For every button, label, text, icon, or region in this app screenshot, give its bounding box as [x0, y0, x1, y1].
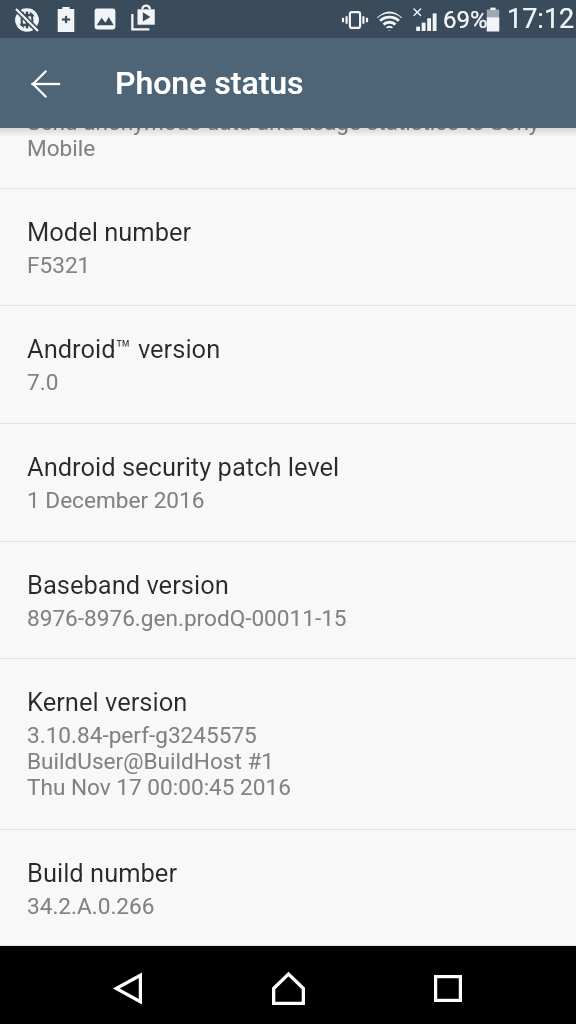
- staticText: Mobile: [27, 135, 96, 161]
- button[interactable]: Recent apps: [408, 954, 488, 1022]
- staticText: F5321: [27, 252, 91, 278]
- staticText: Phone status: [115, 64, 304, 102]
- button[interactable]: Baseband version: [0, 542, 576, 659]
- staticText: 7.0: [27, 369, 59, 395]
- staticText: Send anonymous data and usage statistics…: [27, 128, 540, 135]
- button[interactable]: Android security patch level: [0, 424, 576, 542]
- button[interactable]: Navigate up: [17, 55, 74, 112]
- staticText: 1 December 2016: [27, 487, 205, 513]
- staticText: 8976-8976.gen.prodQ-00011-15: [27, 605, 347, 631]
- staticText: Android™ version: [27, 334, 221, 364]
- button[interactable]: Back: [88, 954, 168, 1022]
- staticText: Thu Nov 17 00:00:45 2016: [27, 774, 291, 800]
- button[interactable]: Home: [248, 954, 328, 1022]
- staticText: Build number: [27, 858, 178, 888]
- staticText: 17:12: [507, 3, 575, 35]
- staticText: Baseband version: [27, 570, 229, 600]
- button[interactable]: Kernel version: [0, 659, 576, 830]
- staticText: Android security patch level: [27, 452, 340, 482]
- staticText: BuildUser@BuildHost #1: [27, 748, 275, 774]
- staticText: 34.2.A.0.266: [27, 893, 155, 919]
- staticText: 69%: [443, 6, 488, 34]
- button[interactable]: Send anonymous data and usage statistics…: [0, 128, 576, 189]
- staticText: Model number: [27, 217, 192, 247]
- staticText: Kernel version: [27, 687, 188, 717]
- button[interactable]: Model number: [0, 189, 576, 306]
- button[interactable]: Build number: [0, 830, 576, 946]
- staticText: 3.10.84-perf-g3245575: [27, 722, 257, 748]
- button[interactable]: Android™ version: [0, 306, 576, 424]
